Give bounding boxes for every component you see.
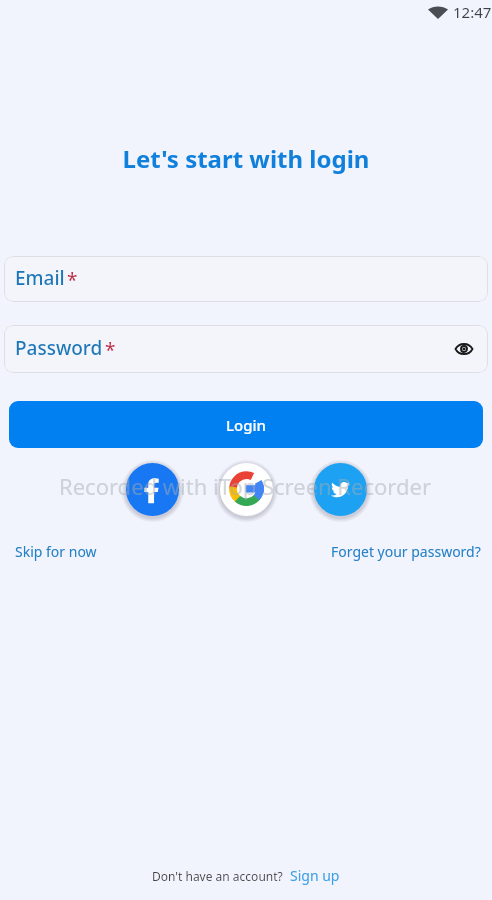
staticText: 12:47 <box>453 2 492 22</box>
staticText: Email <box>15 265 65 291</box>
staticText: * <box>67 267 78 293</box>
button[interactable]: Password <box>4 325 488 373</box>
button[interactable]: Sign in with Facebook <box>126 463 179 516</box>
staticText: Recorded with iTop Screen Recorder <box>59 471 431 501</box>
button[interactable]: Forget your password? <box>331 542 481 561</box>
button[interactable]: Email <box>4 256 488 302</box>
staticText: Login <box>226 415 266 435</box>
button[interactable]: Sign up <box>290 866 340 885</box>
staticText: Let's start with login <box>0 142 492 175</box>
button[interactable]: Toggle password visibility <box>451 336 477 362</box>
button[interactable]: Sign in with Twitter <box>314 463 367 516</box>
staticText: * <box>105 337 116 363</box>
button[interactable]: Login <box>9 401 483 448</box>
button[interactable]: Skip for now <box>15 542 97 561</box>
button[interactable]: Sign in with Google <box>220 463 273 516</box>
staticText: Don't have an account? <box>152 868 283 884</box>
staticText: Password <box>15 335 103 361</box>
